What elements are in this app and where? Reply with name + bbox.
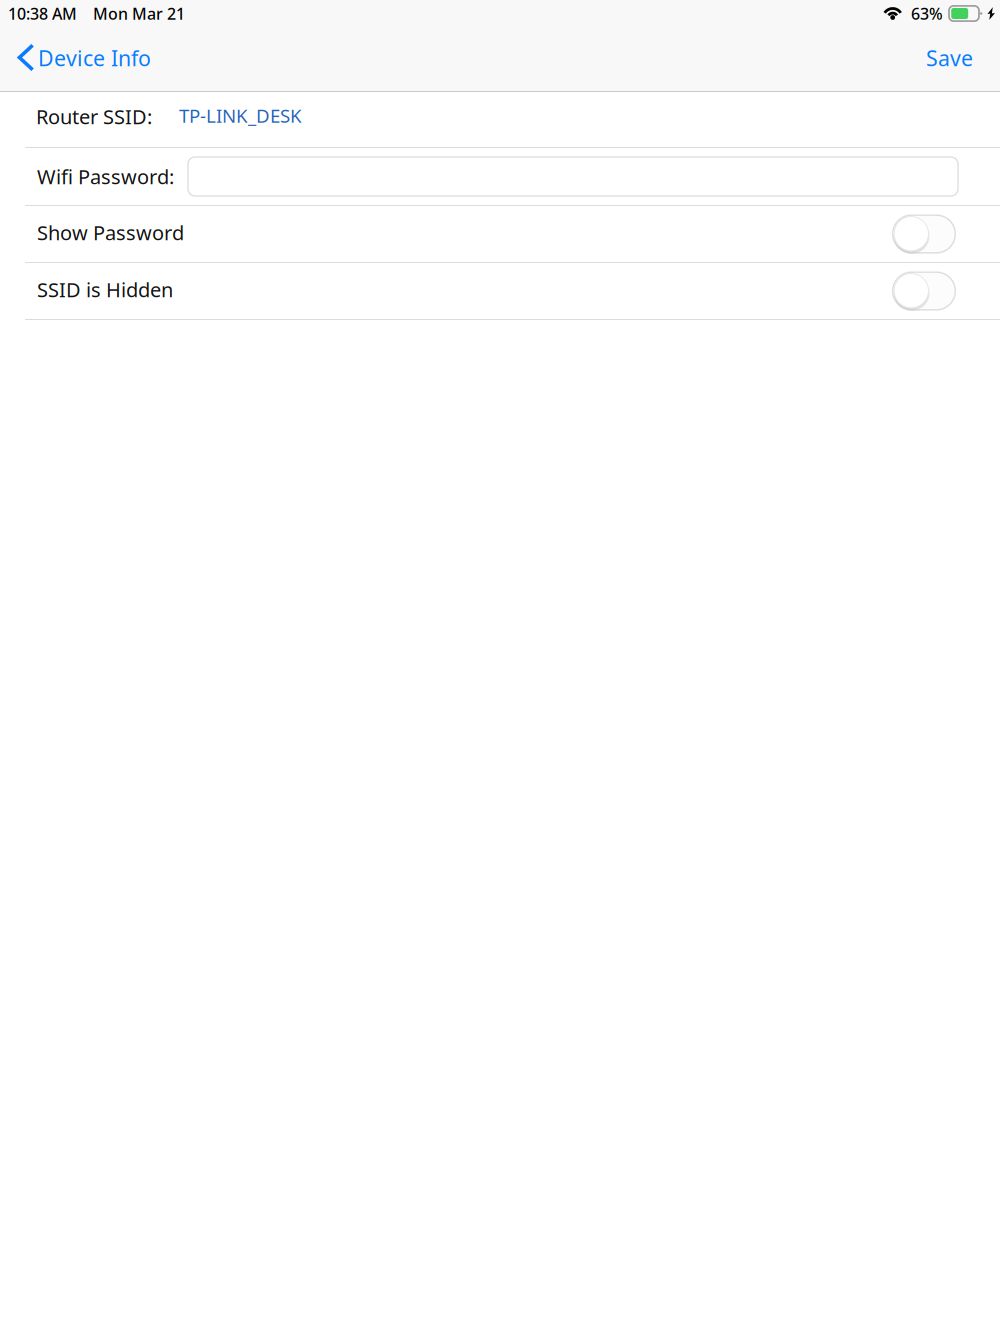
button[interactable]: Device Info [0, 27, 163, 91]
staticText: TP-LINK_DESK [179, 103, 302, 128]
staticText: Mon Mar 21 [93, 3, 185, 24]
staticText: Save [926, 44, 973, 72]
button[interactable]: Show Password [892, 214, 956, 253]
button[interactable]: Save [902, 27, 1000, 91]
staticText: 10:38 AM [8, 3, 77, 24]
staticText: Wifi Password: [37, 163, 174, 190]
staticText: SSID is Hidden [37, 276, 173, 303]
button[interactable]: SSID is Hidden [892, 271, 956, 310]
staticText: Show Password [37, 219, 184, 246]
button[interactable]: Wifi Password [188, 157, 958, 196]
staticText: Router SSID: [36, 103, 152, 130]
staticText: Device Info [38, 44, 151, 72]
staticText: 63% [911, 3, 943, 24]
